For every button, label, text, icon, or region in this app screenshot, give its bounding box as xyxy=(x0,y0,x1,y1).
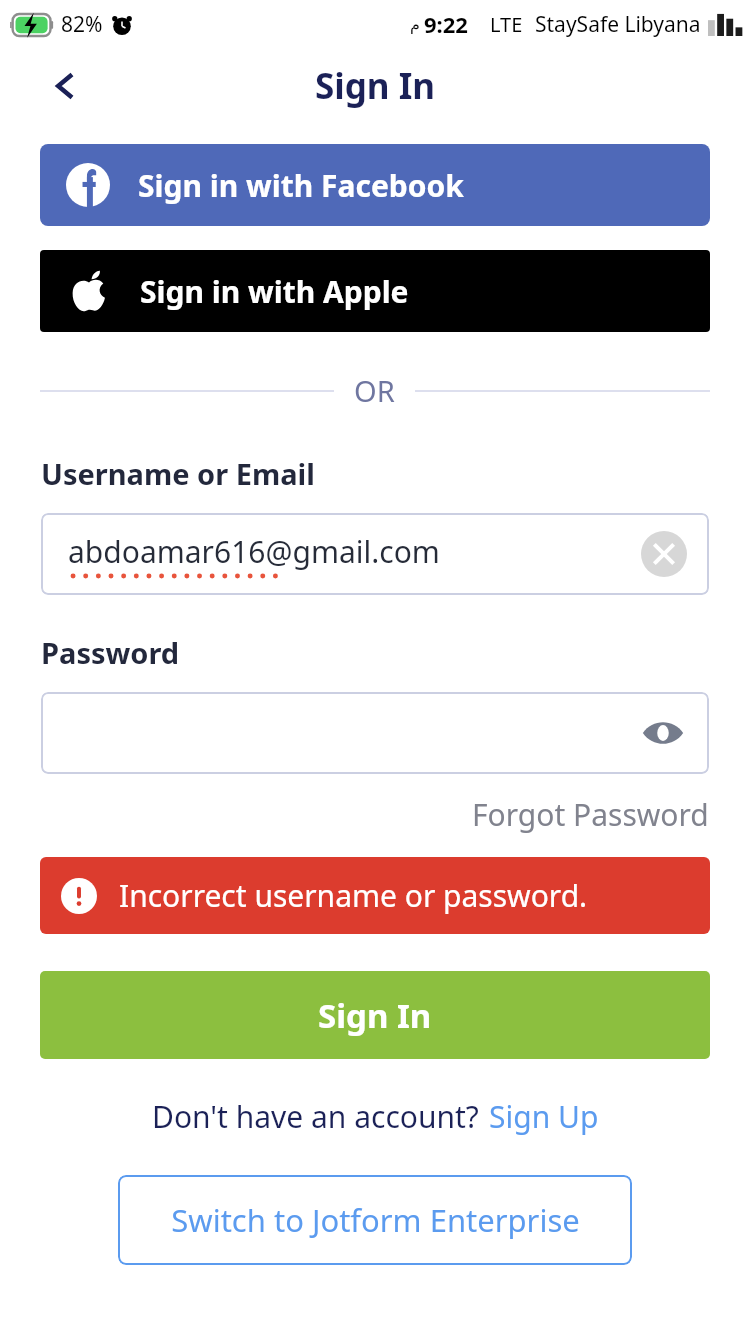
staticText: OR xyxy=(354,371,395,410)
button[interactable]: Clear text xyxy=(641,531,687,577)
staticText: Switch to Jotform Enterprise xyxy=(171,1199,580,1241)
button[interactable]: abdoamar616@gmail.com xyxy=(41,513,709,595)
staticText: Sign In xyxy=(315,62,436,110)
button[interactable]: Sign In xyxy=(40,971,710,1059)
staticText: Sign In xyxy=(318,993,432,1038)
staticText: Forgot Password xyxy=(472,794,709,835)
staticText: LTE xyxy=(490,11,523,38)
button[interactable]: Forgot Password xyxy=(472,794,709,835)
button[interactable]: Switch to Jotform Enterprise xyxy=(118,1175,632,1265)
staticText: م xyxy=(410,15,420,34)
button[interactable]: Show password xyxy=(41,692,709,774)
staticText: 9:22 xyxy=(424,9,468,39)
staticText: Password xyxy=(41,633,180,672)
button[interactable]: Back xyxy=(36,56,96,116)
staticText: Username or Email xyxy=(41,454,315,493)
staticText: Sign Up xyxy=(489,1096,599,1137)
staticText: Don't have an account? xyxy=(152,1096,479,1137)
staticText: Sign in with Facebook xyxy=(138,165,464,206)
button[interactable]: Show password xyxy=(639,709,687,757)
staticText: abdoamar616@gmail.com xyxy=(68,531,440,572)
button[interactable]: Sign in with Facebook xyxy=(40,144,710,226)
staticText: StaySafe Libyana xyxy=(535,10,701,39)
staticText: 82% xyxy=(61,10,103,39)
staticText: Sign in with Apple xyxy=(140,271,409,312)
button[interactable]: Sign in with Apple xyxy=(40,250,710,332)
staticText: Incorrect username or password. xyxy=(119,875,588,916)
button[interactable]: Sign Up xyxy=(489,1096,599,1137)
